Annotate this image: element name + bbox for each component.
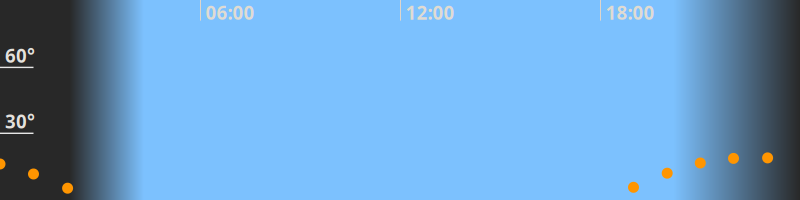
staticText: 06:00 [205,0,254,25]
staticText: 12:00 [405,0,454,25]
staticText: 18:00 [605,0,654,25]
staticText: 60° [5,43,35,68]
staticText: 30° [5,109,35,134]
